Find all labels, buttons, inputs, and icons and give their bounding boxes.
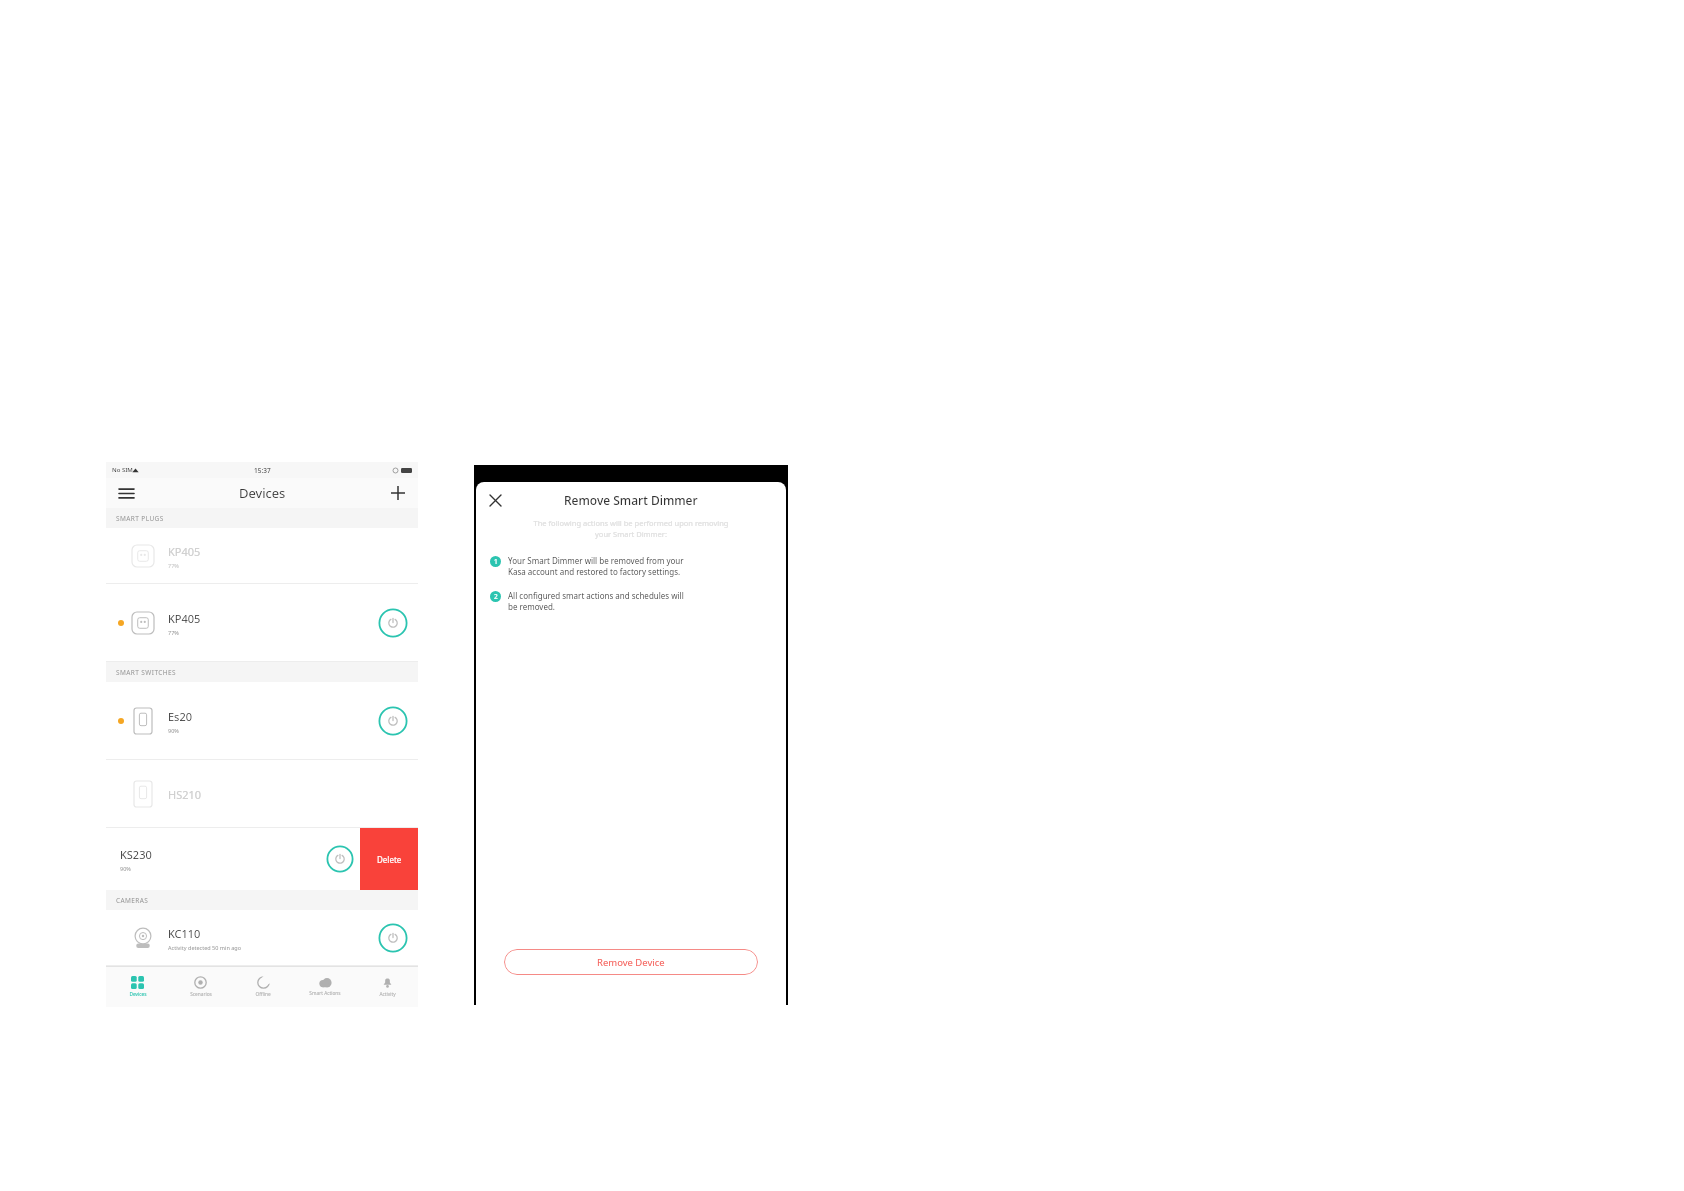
staticText: SMART SWITCHES bbox=[116, 668, 176, 677]
staticText: KP405 bbox=[168, 544, 201, 559]
button[interactable]: KP405 bbox=[106, 528, 418, 584]
staticText: HS210 bbox=[168, 787, 202, 802]
staticText: 90% bbox=[168, 727, 179, 734]
staticText: CAMERAS bbox=[116, 896, 149, 905]
staticText: KC110 bbox=[168, 926, 201, 941]
button[interactable]: Scenarios bbox=[169, 967, 232, 1007]
staticText: 77% bbox=[168, 629, 179, 636]
button[interactable]: Offline bbox=[232, 967, 294, 1007]
staticText: Smart Actions bbox=[309, 990, 341, 997]
staticText: No SIM bbox=[112, 466, 133, 474]
staticText: 1 bbox=[494, 557, 498, 566]
staticText: Es20 bbox=[168, 709, 192, 724]
button[interactable]: Remove Device bbox=[504, 949, 758, 975]
button[interactable]: Close bbox=[484, 489, 506, 511]
button[interactable]: Power toggle bbox=[378, 608, 408, 638]
staticText: KS230 bbox=[120, 847, 152, 862]
button[interactable]: HS210 bbox=[106, 760, 418, 828]
staticText: Activity detected 50 min ago bbox=[168, 944, 242, 951]
staticText: Remove Smart Dimmer bbox=[564, 492, 698, 508]
staticText: SMART PLUGS bbox=[116, 514, 164, 523]
staticText: 15:37 bbox=[254, 466, 271, 475]
button[interactable]: Add device bbox=[386, 481, 410, 505]
staticText: Remove Device bbox=[597, 956, 665, 969]
staticText: Your Smart Dimmer will be removed from y… bbox=[508, 555, 684, 577]
staticText: All configured smart actions and schedul… bbox=[508, 590, 684, 612]
staticText: Offline bbox=[255, 991, 271, 998]
button[interactable]: Devices bbox=[106, 967, 169, 1007]
staticText: The following actions will be performed … bbox=[490, 518, 772, 539]
staticText: 2 bbox=[494, 592, 498, 601]
staticText: KP405 bbox=[168, 611, 201, 626]
button[interactable]: Power toggle bbox=[326, 845, 354, 873]
button[interactable]: Es20 bbox=[106, 682, 418, 760]
button[interactable]: KP405 bbox=[106, 584, 418, 662]
button[interactable]: KC110 bbox=[106, 910, 418, 966]
staticText: Delete bbox=[377, 854, 402, 865]
button[interactable]: Power toggle bbox=[378, 923, 408, 953]
button[interactable]: Menu bbox=[114, 481, 138, 505]
staticText: 77% bbox=[168, 562, 179, 569]
staticText: 90% bbox=[120, 865, 131, 872]
button[interactable]: Smart Actions bbox=[294, 967, 356, 1007]
staticText: Activity bbox=[379, 991, 396, 998]
button[interactable]: Activity bbox=[356, 967, 418, 1007]
staticText: Scenarios bbox=[190, 991, 212, 998]
button[interactable]: Delete bbox=[360, 828, 418, 890]
staticText: Devices bbox=[239, 484, 286, 502]
button[interactable]: Power toggle bbox=[378, 706, 408, 736]
staticText: Devices bbox=[129, 991, 147, 998]
